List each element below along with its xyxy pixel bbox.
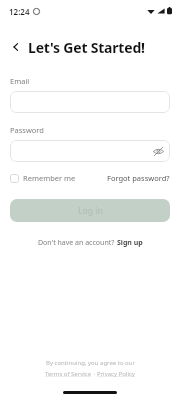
button[interactable]: Terms of Service xyxy=(45,370,92,378)
button[interactable]: Back xyxy=(8,39,24,55)
staticText: Sign up xyxy=(117,238,143,248)
button[interactable]: Forgot password? xyxy=(107,171,170,185)
staticText: Let's Get Started! xyxy=(28,38,145,57)
staticText: Forgot password? xyxy=(107,173,170,183)
staticText: Don't have an account? xyxy=(38,238,117,248)
button[interactable]: Password input xyxy=(10,140,170,162)
staticText: 12:24 xyxy=(9,6,30,17)
staticText: Terms of Service xyxy=(45,370,92,378)
button[interactable]: Sign up xyxy=(117,238,143,248)
staticText: Email xyxy=(10,76,30,86)
staticText: Password xyxy=(10,125,44,135)
button[interactable]: Log in xyxy=(10,199,170,222)
button[interactable]: Email input xyxy=(10,91,170,113)
staticText: By continuing, you agree to our xyxy=(46,359,135,367)
staticText: Remember me xyxy=(23,173,76,183)
staticText: Log in xyxy=(78,205,103,217)
staticText: · xyxy=(92,370,97,378)
staticText: Privacy Policy xyxy=(97,370,135,378)
button[interactable]: Privacy Policy xyxy=(97,370,135,378)
button[interactable]: Remember me xyxy=(10,171,76,185)
button[interactable]: Show password xyxy=(152,145,165,158)
